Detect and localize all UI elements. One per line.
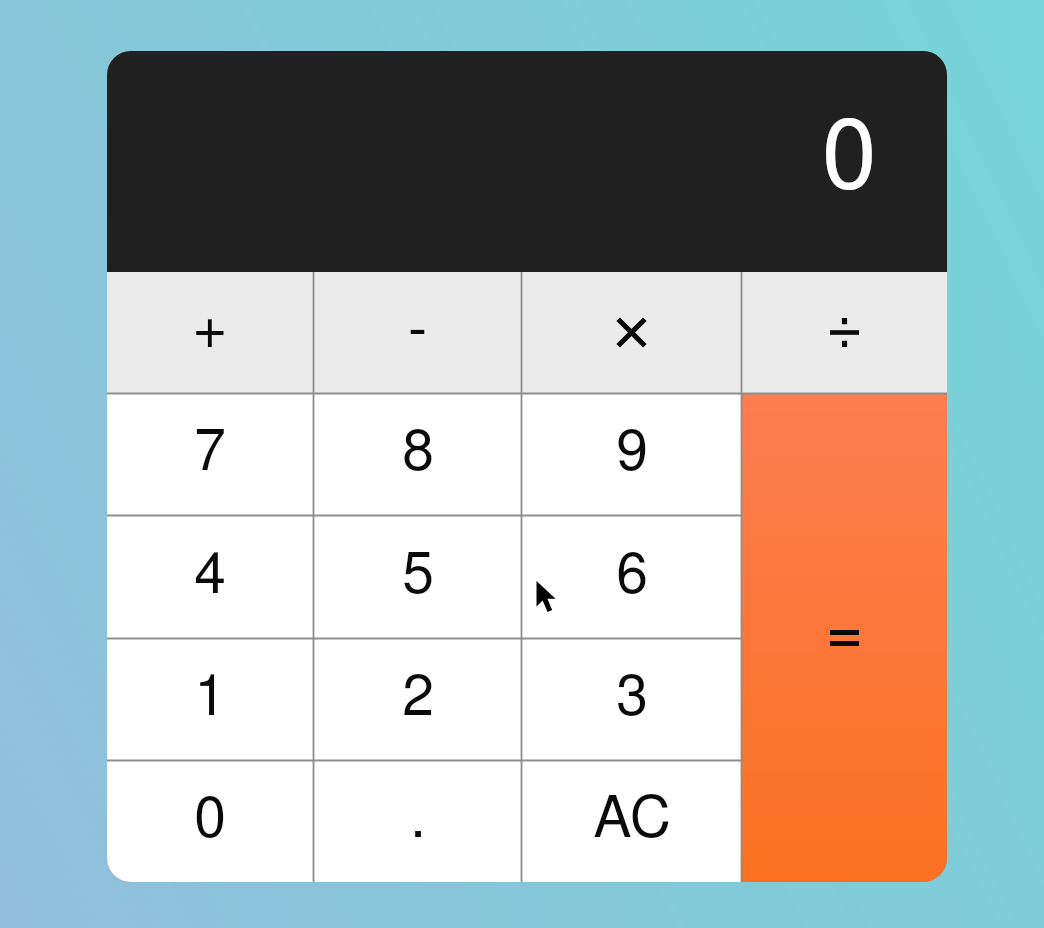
staticText: 2 bbox=[402, 669, 434, 726]
button[interactable]: . bbox=[314, 761, 521, 882]
button[interactable]: 8 bbox=[314, 394, 521, 515]
staticText: 8 bbox=[402, 424, 434, 481]
staticText: + bbox=[193, 300, 227, 357]
button[interactable]: Divide bbox=[742, 272, 947, 393]
staticText: 9 bbox=[616, 424, 648, 481]
staticText: 3 bbox=[616, 669, 648, 726]
other: Divide bbox=[830, 318, 859, 347]
staticText: 4 bbox=[194, 547, 226, 604]
button[interactable]: - bbox=[314, 272, 521, 393]
button[interactable]: Result display, 0 bbox=[107, 51, 947, 272]
button[interactable]: Equals bbox=[742, 394, 947, 882]
staticText: AC bbox=[593, 791, 671, 848]
button[interactable]: 6 bbox=[522, 516, 741, 638]
button[interactable]: 3 bbox=[522, 639, 741, 760]
button[interactable]: 7 bbox=[107, 394, 313, 515]
button[interactable]: 4 bbox=[107, 516, 313, 638]
staticText: . bbox=[410, 791, 425, 848]
staticText: 5 bbox=[402, 547, 434, 604]
button[interactable]: 2 bbox=[314, 639, 521, 760]
staticText: - bbox=[408, 302, 427, 359]
staticText: 0 bbox=[194, 791, 226, 848]
button[interactable]: + bbox=[107, 272, 313, 393]
other: Equals bbox=[830, 630, 859, 646]
button[interactable]: 1 bbox=[107, 639, 313, 760]
button[interactable]: 9 bbox=[522, 394, 741, 515]
staticText: 7 bbox=[194, 424, 226, 481]
staticText: 1 bbox=[194, 669, 226, 726]
button[interactable]: 5 bbox=[314, 516, 521, 638]
button[interactable]: AC bbox=[522, 761, 741, 882]
staticText: 0 bbox=[822, 110, 877, 208]
staticText: 6 bbox=[616, 547, 648, 604]
button[interactable]: 0 bbox=[107, 761, 313, 882]
button[interactable]: Multiply bbox=[522, 272, 741, 393]
other: Multiply bbox=[617, 318, 646, 347]
